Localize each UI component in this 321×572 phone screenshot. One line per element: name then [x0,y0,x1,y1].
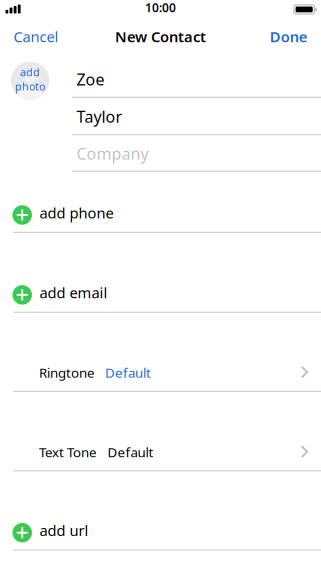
staticText: add phone [39,203,113,222]
button[interactable]: Ringtone [0,354,321,391]
staticText: photo [15,79,45,93]
button[interactable]: add phone [0,195,321,232]
button[interactable]: Company [0,135,321,172]
button[interactable]: Text Tone [0,433,321,470]
button[interactable]: add url [0,513,321,550]
button[interactable]: add email [0,275,321,312]
staticText: Cancel [13,27,58,46]
button[interactable]: Taylor [0,98,321,135]
staticText: Default [107,443,153,461]
staticText: Zoe [76,69,104,90]
button[interactable]: Zoe [0,61,321,98]
staticText: Text Tone [39,443,97,461]
staticText: 10:00 [145,0,176,15]
staticText: Taylor [76,106,122,127]
button[interactable]: Done [0,24,321,48]
staticText: add url [39,521,88,540]
button[interactable]: Cancel [0,24,58,48]
staticText: Done [270,27,308,46]
staticText: New Contact [115,27,206,46]
staticText: Ringtone [39,364,95,381]
button[interactable]: add photo [11,62,49,100]
staticText: add email [39,283,107,302]
staticText: Default [105,364,151,381]
staticText: add [20,65,40,79]
staticText: Company [76,143,148,164]
